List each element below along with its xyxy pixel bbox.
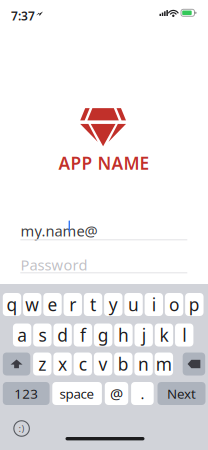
button[interactable]: i <box>145 293 163 316</box>
button[interactable]: d <box>53 323 72 346</box>
button[interactable]: g <box>94 323 112 346</box>
staticText: t <box>90 293 96 316</box>
button[interactable]: Shift <box>3 352 30 375</box>
button[interactable]: e <box>43 293 62 316</box>
staticText: e <box>47 293 57 316</box>
staticText: :) <box>19 422 25 435</box>
staticText: i <box>152 293 156 316</box>
button[interactable]: j <box>134 323 153 346</box>
staticText: s <box>38 323 46 346</box>
button[interactable]: z <box>33 352 51 375</box>
staticText: g <box>98 323 109 346</box>
staticText: r <box>69 293 76 316</box>
button[interactable]: Next <box>157 382 205 405</box>
button[interactable]: l <box>175 323 193 346</box>
button[interactable]: v <box>94 352 112 375</box>
button[interactable]: o <box>165 293 183 316</box>
staticText: space <box>60 385 95 402</box>
button[interactable]: @ <box>105 382 128 405</box>
staticText: z <box>38 352 46 375</box>
staticText: . <box>140 384 144 403</box>
button[interactable]: b <box>114 352 132 375</box>
button[interactable]: space <box>52 382 102 405</box>
staticText: @ <box>110 384 123 403</box>
button[interactable]: c <box>74 352 92 375</box>
staticText: 123 <box>14 385 38 402</box>
button[interactable]: x <box>53 352 72 375</box>
button[interactable]: . <box>131 382 154 405</box>
staticText: APP NAME <box>58 151 149 174</box>
button[interactable]: Delete <box>183 352 205 375</box>
staticText: b <box>118 352 129 375</box>
staticText: Next <box>167 385 196 402</box>
button[interactable]: f <box>74 323 92 346</box>
staticText: l <box>182 323 186 346</box>
button[interactable]: r <box>64 293 82 316</box>
staticText: n <box>138 352 149 375</box>
button[interactable]: s <box>33 323 52 346</box>
staticText: h <box>118 323 129 346</box>
staticText: u <box>128 293 139 316</box>
staticText: p <box>189 293 200 316</box>
staticText: k <box>159 323 168 346</box>
staticText: y <box>109 293 118 316</box>
staticText: o <box>169 293 179 316</box>
button[interactable]: t <box>84 293 102 316</box>
button[interactable]: Emoji <box>12 418 32 438</box>
staticText: j <box>142 323 146 346</box>
button[interactable]: q <box>3 293 21 316</box>
staticText: w <box>25 293 39 316</box>
staticText: v <box>99 352 108 375</box>
staticText: a <box>17 323 27 346</box>
button[interactable]: a <box>13 323 31 346</box>
button[interactable]: n <box>134 352 153 375</box>
staticText: 7:37 <box>11 8 35 24</box>
staticText: q <box>6 293 17 316</box>
staticText: my.name@ <box>20 221 97 240</box>
staticText: c <box>79 352 87 375</box>
button[interactable]: y <box>104 293 122 316</box>
button[interactable]: p <box>185 293 203 316</box>
staticText: x <box>58 352 67 375</box>
staticText: f <box>80 323 86 346</box>
button[interactable]: m <box>155 352 173 375</box>
button[interactable]: u <box>124 293 143 316</box>
staticText: d <box>57 323 68 346</box>
staticText: Password <box>20 255 87 274</box>
button[interactable]: k <box>155 323 173 346</box>
button[interactable]: w <box>23 293 41 316</box>
button[interactable]: 123 <box>3 382 50 405</box>
staticText: m <box>156 352 172 375</box>
button[interactable]: h <box>114 323 133 346</box>
